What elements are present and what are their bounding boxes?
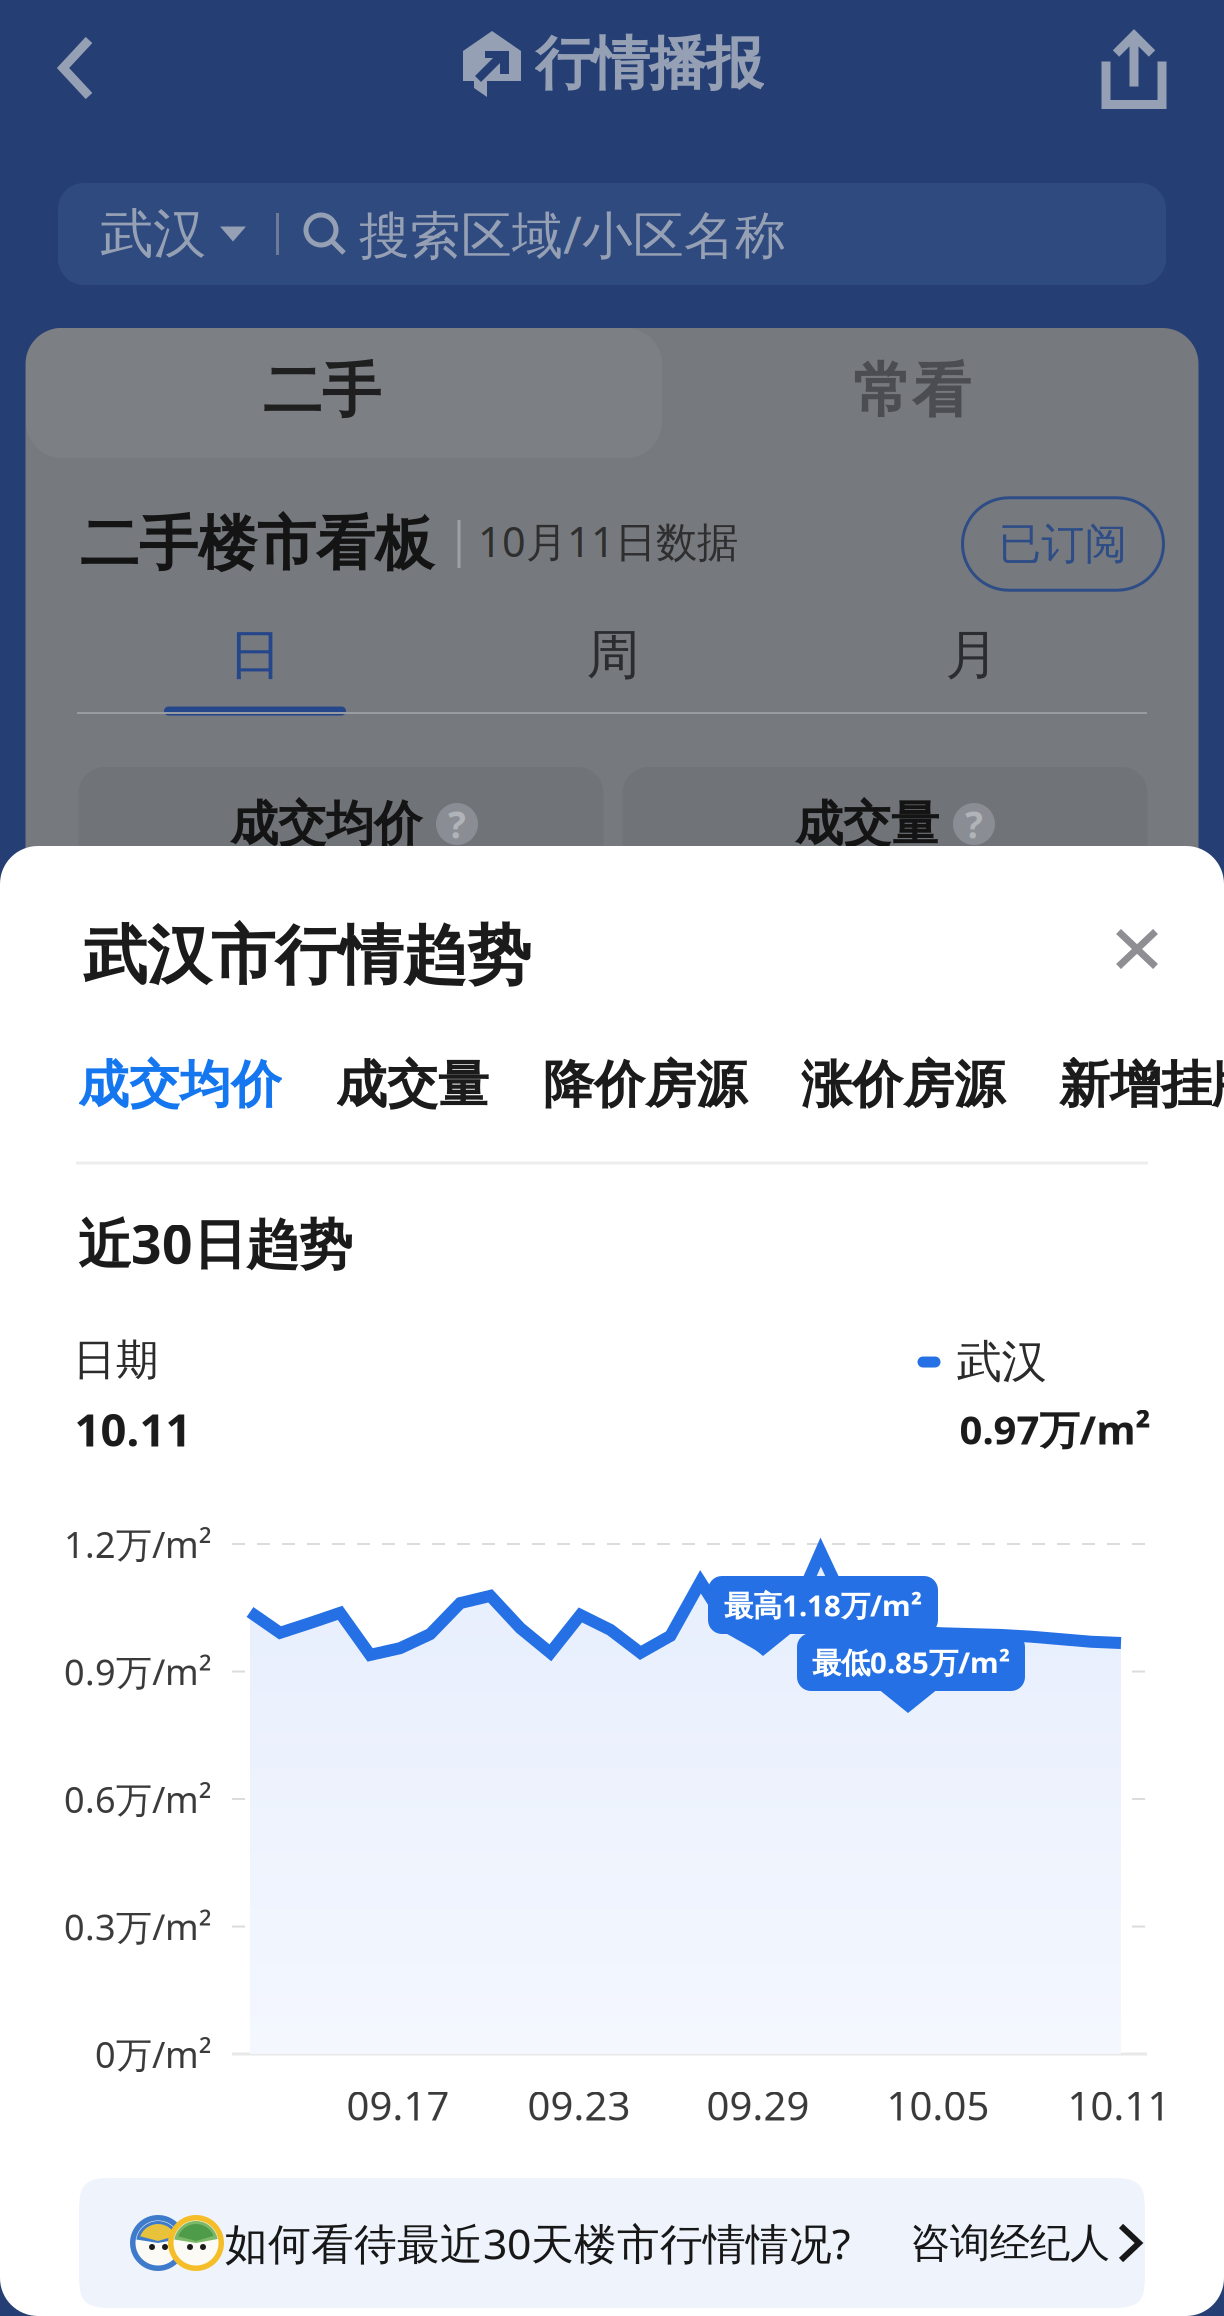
- button[interactable]: 涨价房源: [801, 1054, 1005, 1116]
- staticText: 1.2万/m²: [64, 1520, 212, 1568]
- staticText: 周: [586, 622, 639, 688]
- staticText: 新增挂牌: [1059, 1054, 1224, 1116]
- staticText: 降价房源: [543, 1054, 747, 1116]
- staticText: 日: [228, 622, 281, 688]
- staticText: 0.3万/m²: [64, 1903, 212, 1950]
- staticText: ?: [448, 799, 466, 849]
- staticText: 10.11: [74, 1399, 191, 1459]
- button[interactable]: 降价房源: [543, 1054, 747, 1116]
- staticText: 武汉: [100, 201, 206, 267]
- staticText: 09.17: [346, 2078, 449, 2131]
- staticText: 近30日趋势: [78, 1208, 352, 1278]
- staticText: 10月11日数据: [478, 514, 738, 568]
- staticText: 涨价房源: [801, 1054, 1005, 1116]
- staticText: 行情播报: [535, 29, 763, 99]
- staticText: 二手楼市看板: [80, 508, 434, 580]
- staticText: 成交量: [336, 1054, 489, 1116]
- staticText: 0.97万/m²: [959, 1402, 1150, 1455]
- staticText: 武汉: [956, 1334, 1046, 1390]
- button[interactable]: Back: [11, 5, 141, 131]
- button[interactable]: 成交量: [336, 1054, 489, 1116]
- button[interactable]: Close: [1082, 894, 1192, 1004]
- staticText: 如何看待最近30天楼市行情情况?: [225, 2215, 851, 2271]
- staticText: 最高1.18万/m²: [724, 1585, 922, 1624]
- button[interactable]: 如何看待最近30天楼市行情情况?: [79, 2178, 1145, 2308]
- button[interactable]: Share: [1069, 7, 1199, 133]
- button[interactable]: 已订阅: [962, 498, 1163, 590]
- staticText: 已订阅: [998, 518, 1127, 570]
- staticText: 09.23: [527, 2078, 630, 2131]
- staticText: 最低0.85万/m²: [812, 1642, 1010, 1681]
- staticText: 搜索区域/小区名称: [359, 200, 786, 268]
- staticText: 咨询经纪人: [910, 2218, 1110, 2267]
- staticText: 月: [945, 622, 998, 688]
- staticText: 成交均价: [230, 794, 422, 853]
- staticText: 0.6万/m²: [64, 1775, 212, 1823]
- button[interactable]: 成交均价: [78, 1054, 282, 1116]
- staticText: 09.29: [706, 2078, 809, 2131]
- staticText: 二手: [263, 355, 381, 427]
- staticText: ?: [965, 799, 983, 849]
- staticText: 0.9万/m²: [64, 1648, 212, 1695]
- button[interactable]: 新增挂牌: [1059, 1054, 1224, 1116]
- staticText: 10.11: [1067, 2078, 1170, 2131]
- staticText: 武汉市行情趋势: [83, 917, 531, 995]
- staticText: 日期: [73, 1334, 159, 1386]
- staticText: 0万/m²: [95, 2030, 212, 2078]
- staticText: 常看: [853, 355, 971, 427]
- staticText: 10.05: [886, 2078, 989, 2131]
- staticText: 成交量: [795, 794, 939, 853]
- staticText: 成交均价: [78, 1054, 282, 1116]
